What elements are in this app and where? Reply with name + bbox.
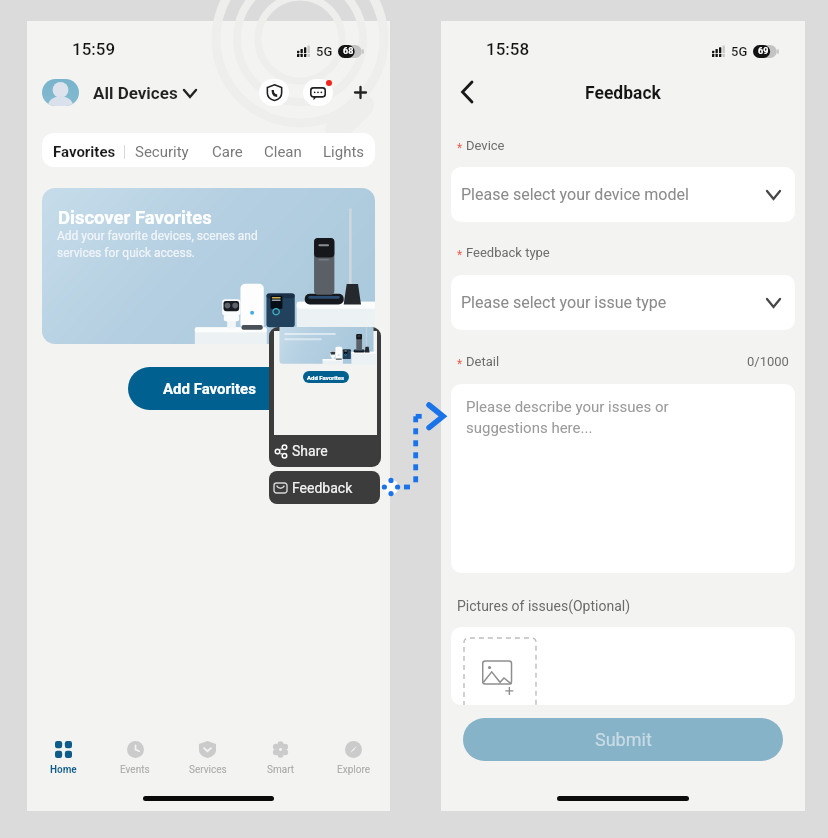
staticText: Home: [50, 764, 77, 776]
button[interactable]: Add Favorites: [128, 367, 290, 410]
button[interactable]: Submit: [463, 718, 783, 761]
staticText: Events: [120, 764, 150, 776]
button[interactable]: Explore: [317, 737, 390, 776]
staticText: Add Favorites: [307, 374, 345, 381]
staticText: 68: [343, 46, 354, 57]
button[interactable]: Events: [99, 737, 171, 776]
staticText: Lights: [323, 143, 365, 161]
staticText: 0/1000: [747, 354, 789, 369]
button[interactable]: Please describe your issues or suggestio…: [451, 384, 795, 573]
staticText: Device: [466, 138, 505, 153]
staticText: *: [457, 141, 463, 155]
staticText: Share: [292, 443, 328, 459]
staticText: Discover Favorites: [58, 207, 212, 229]
button[interactable]: Feedback: [269, 471, 380, 504]
staticText: *: [457, 357, 463, 371]
button[interactable]: Profile: [42, 79, 79, 106]
staticText: Favorites: [53, 143, 116, 161]
staticText: Please select your issue type: [461, 293, 667, 312]
staticText: 15:59: [72, 39, 116, 59]
staticText: Care: [212, 143, 243, 161]
staticText: Feedback: [585, 83, 661, 104]
staticText: Smart: [267, 764, 295, 776]
button[interactable]: Lights: [323, 143, 365, 161]
staticText: Submit: [595, 729, 652, 750]
button[interactable]: Clean: [264, 143, 302, 161]
button[interactable]: Security: [135, 143, 189, 161]
staticText: Please describe your issues or suggestio…: [466, 398, 669, 436]
staticText: Security: [135, 143, 189, 161]
button[interactable]: Home: [27, 737, 99, 776]
staticText: 5G: [316, 44, 333, 59]
button[interactable]: All Devices: [93, 83, 196, 103]
staticText: 69: [758, 46, 769, 57]
button[interactable]: Services: [171, 737, 244, 776]
staticText: Detail: [466, 354, 500, 369]
button[interactable]: Security: [259, 79, 289, 106]
staticText: Add your favorite devices, scenes and se…: [57, 229, 258, 260]
button[interactable]: Messages: [303, 79, 333, 106]
button[interactable]: Add device: [345, 79, 375, 106]
staticText: Add Favorites: [163, 380, 256, 398]
button[interactable]: Please select your issue type: [451, 275, 795, 330]
button[interactable]: Favorites: [53, 143, 116, 161]
staticText: Services: [189, 764, 227, 776]
staticText: Pictures of issues(Optional): [457, 598, 631, 614]
button[interactable]: Smart: [244, 737, 317, 776]
button[interactable]: Add Favorites: [269, 327, 381, 467]
staticText: All Devices: [93, 83, 178, 103]
button[interactable]: Care: [212, 143, 243, 161]
button[interactable]: Discover Favorites: [42, 188, 375, 344]
button[interactable]: Back: [448, 74, 484, 110]
staticText: Clean: [264, 143, 302, 161]
button[interactable]: Add picture: [464, 638, 536, 705]
staticText: Feedback type: [466, 245, 550, 260]
staticText: Explore: [337, 764, 370, 776]
button[interactable]: Please select your device model: [451, 167, 795, 222]
staticText: 15:58: [486, 39, 530, 59]
staticText: Feedback: [292, 480, 353, 496]
staticText: *: [457, 248, 463, 262]
staticText: 5G: [731, 44, 748, 59]
staticText: Please select your device model: [461, 185, 689, 204]
